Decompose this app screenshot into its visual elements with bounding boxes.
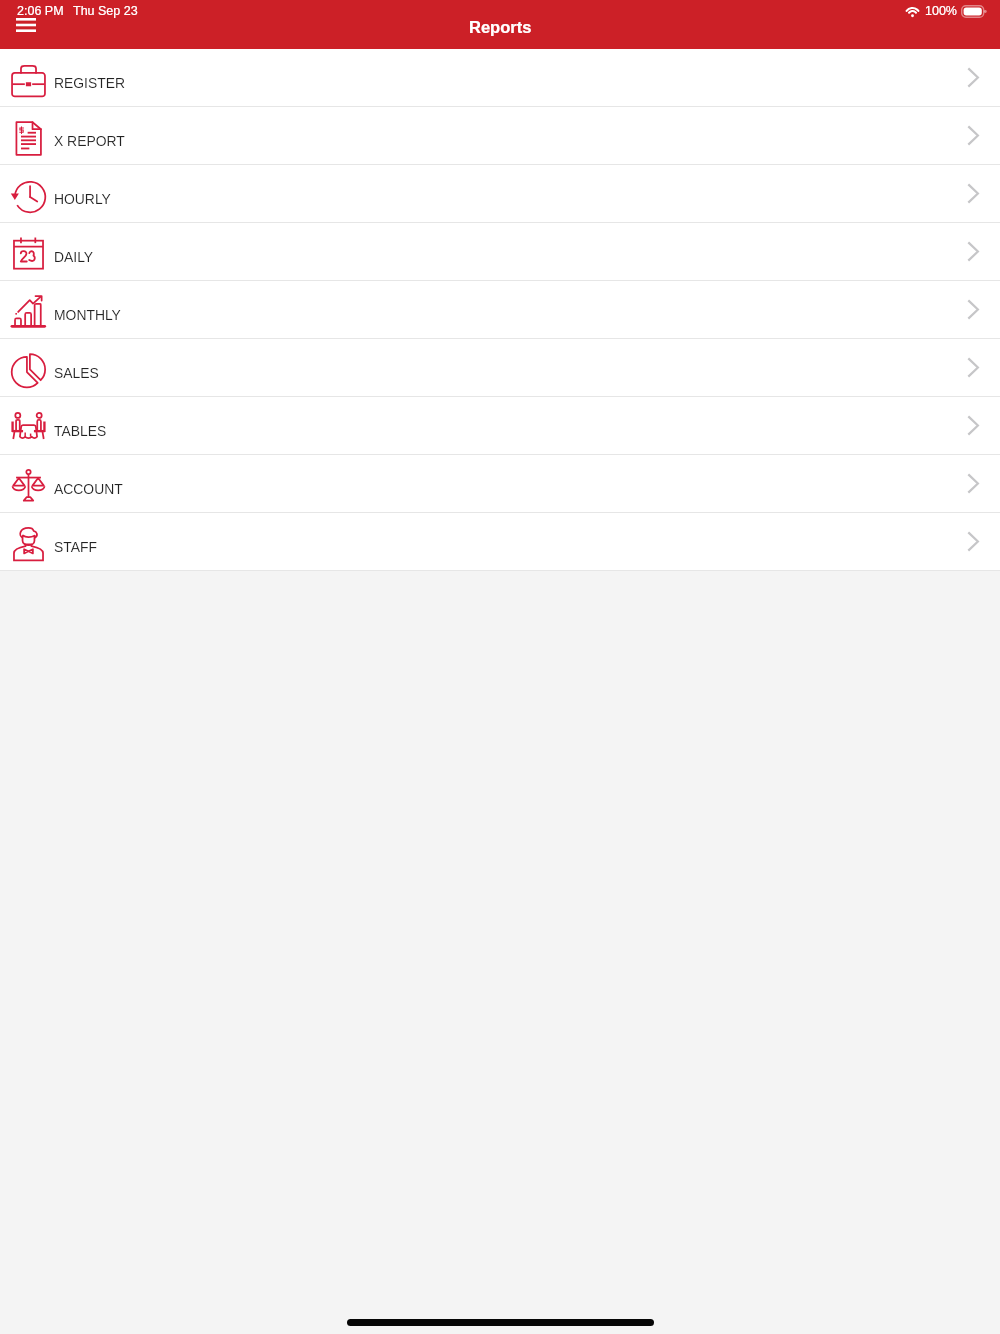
button[interactable]: Menu [6,8,46,42]
staticText: STAFF [54,539,97,555]
button[interactable]: ACCOUNT [0,455,1000,513]
staticText: TABLES [54,423,107,439]
staticText: 100% [925,4,957,18]
button[interactable]: HOURLY [0,165,1000,223]
button[interactable]: MONTHLY [0,281,1000,339]
button[interactable]: REGISTER [0,49,1000,107]
staticText: HOURLY [54,191,111,207]
staticText: DAILY [54,249,94,265]
staticText: MONTHLY [54,307,121,323]
staticText: ACCOUNT [54,481,123,497]
button[interactable]: SALES [0,339,1000,397]
button[interactable]: DAILY [0,223,1000,281]
button[interactable]: STAFF [0,513,1000,571]
staticText: X REPORT [54,133,125,149]
staticText: SALES [54,365,99,381]
button[interactable]: X REPORT [0,107,1000,165]
staticText: 2:06 PM [17,4,64,18]
staticText: Reports [469,18,532,36]
button[interactable]: TABLES [0,397,1000,455]
staticText: Thu Sep 23 [73,4,138,18]
staticText: REGISTER [54,75,126,91]
